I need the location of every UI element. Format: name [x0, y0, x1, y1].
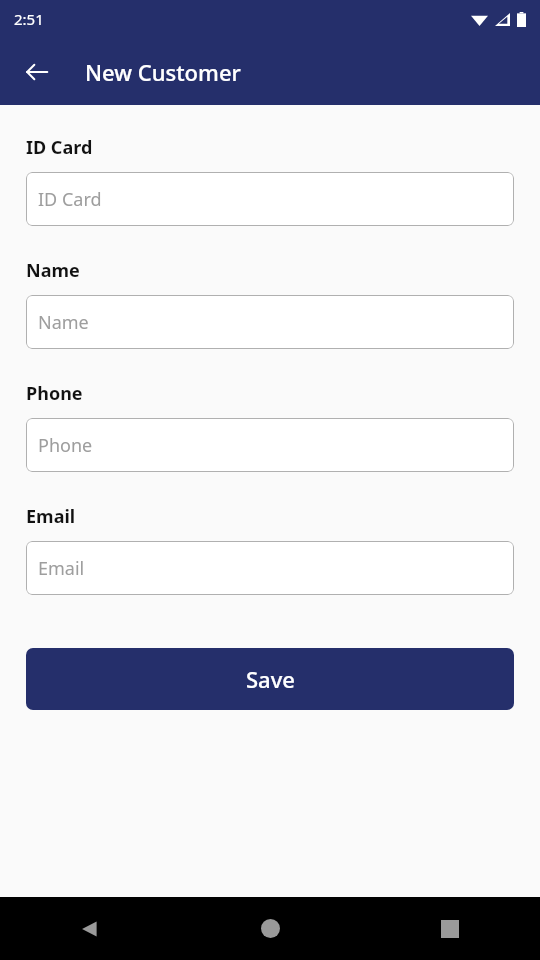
button[interactable]: Back: [0, 897, 180, 960]
staticText: ID Card: [26, 135, 93, 160]
button[interactable]: Back: [13, 48, 61, 96]
staticText: ID Card: [38, 187, 102, 212]
staticText: 2:51: [14, 9, 44, 29]
button[interactable]: Phone: [26, 418, 514, 472]
button[interactable]: ID Card: [26, 172, 514, 226]
staticText: Email: [38, 556, 85, 581]
button[interactable]: Name: [26, 295, 514, 349]
button[interactable]: Home: [180, 897, 360, 960]
staticText: Phone: [38, 433, 93, 458]
button[interactable]: Recent apps: [360, 897, 540, 960]
staticText: Name: [38, 310, 89, 335]
staticText: New Customer: [85, 57, 241, 87]
button[interactable]: Email: [26, 541, 514, 595]
button[interactable]: Save: [26, 648, 514, 710]
staticText: Email: [26, 504, 76, 529]
staticText: Name: [26, 258, 80, 283]
staticText: Save: [246, 664, 295, 694]
staticText: Phone: [26, 381, 83, 406]
